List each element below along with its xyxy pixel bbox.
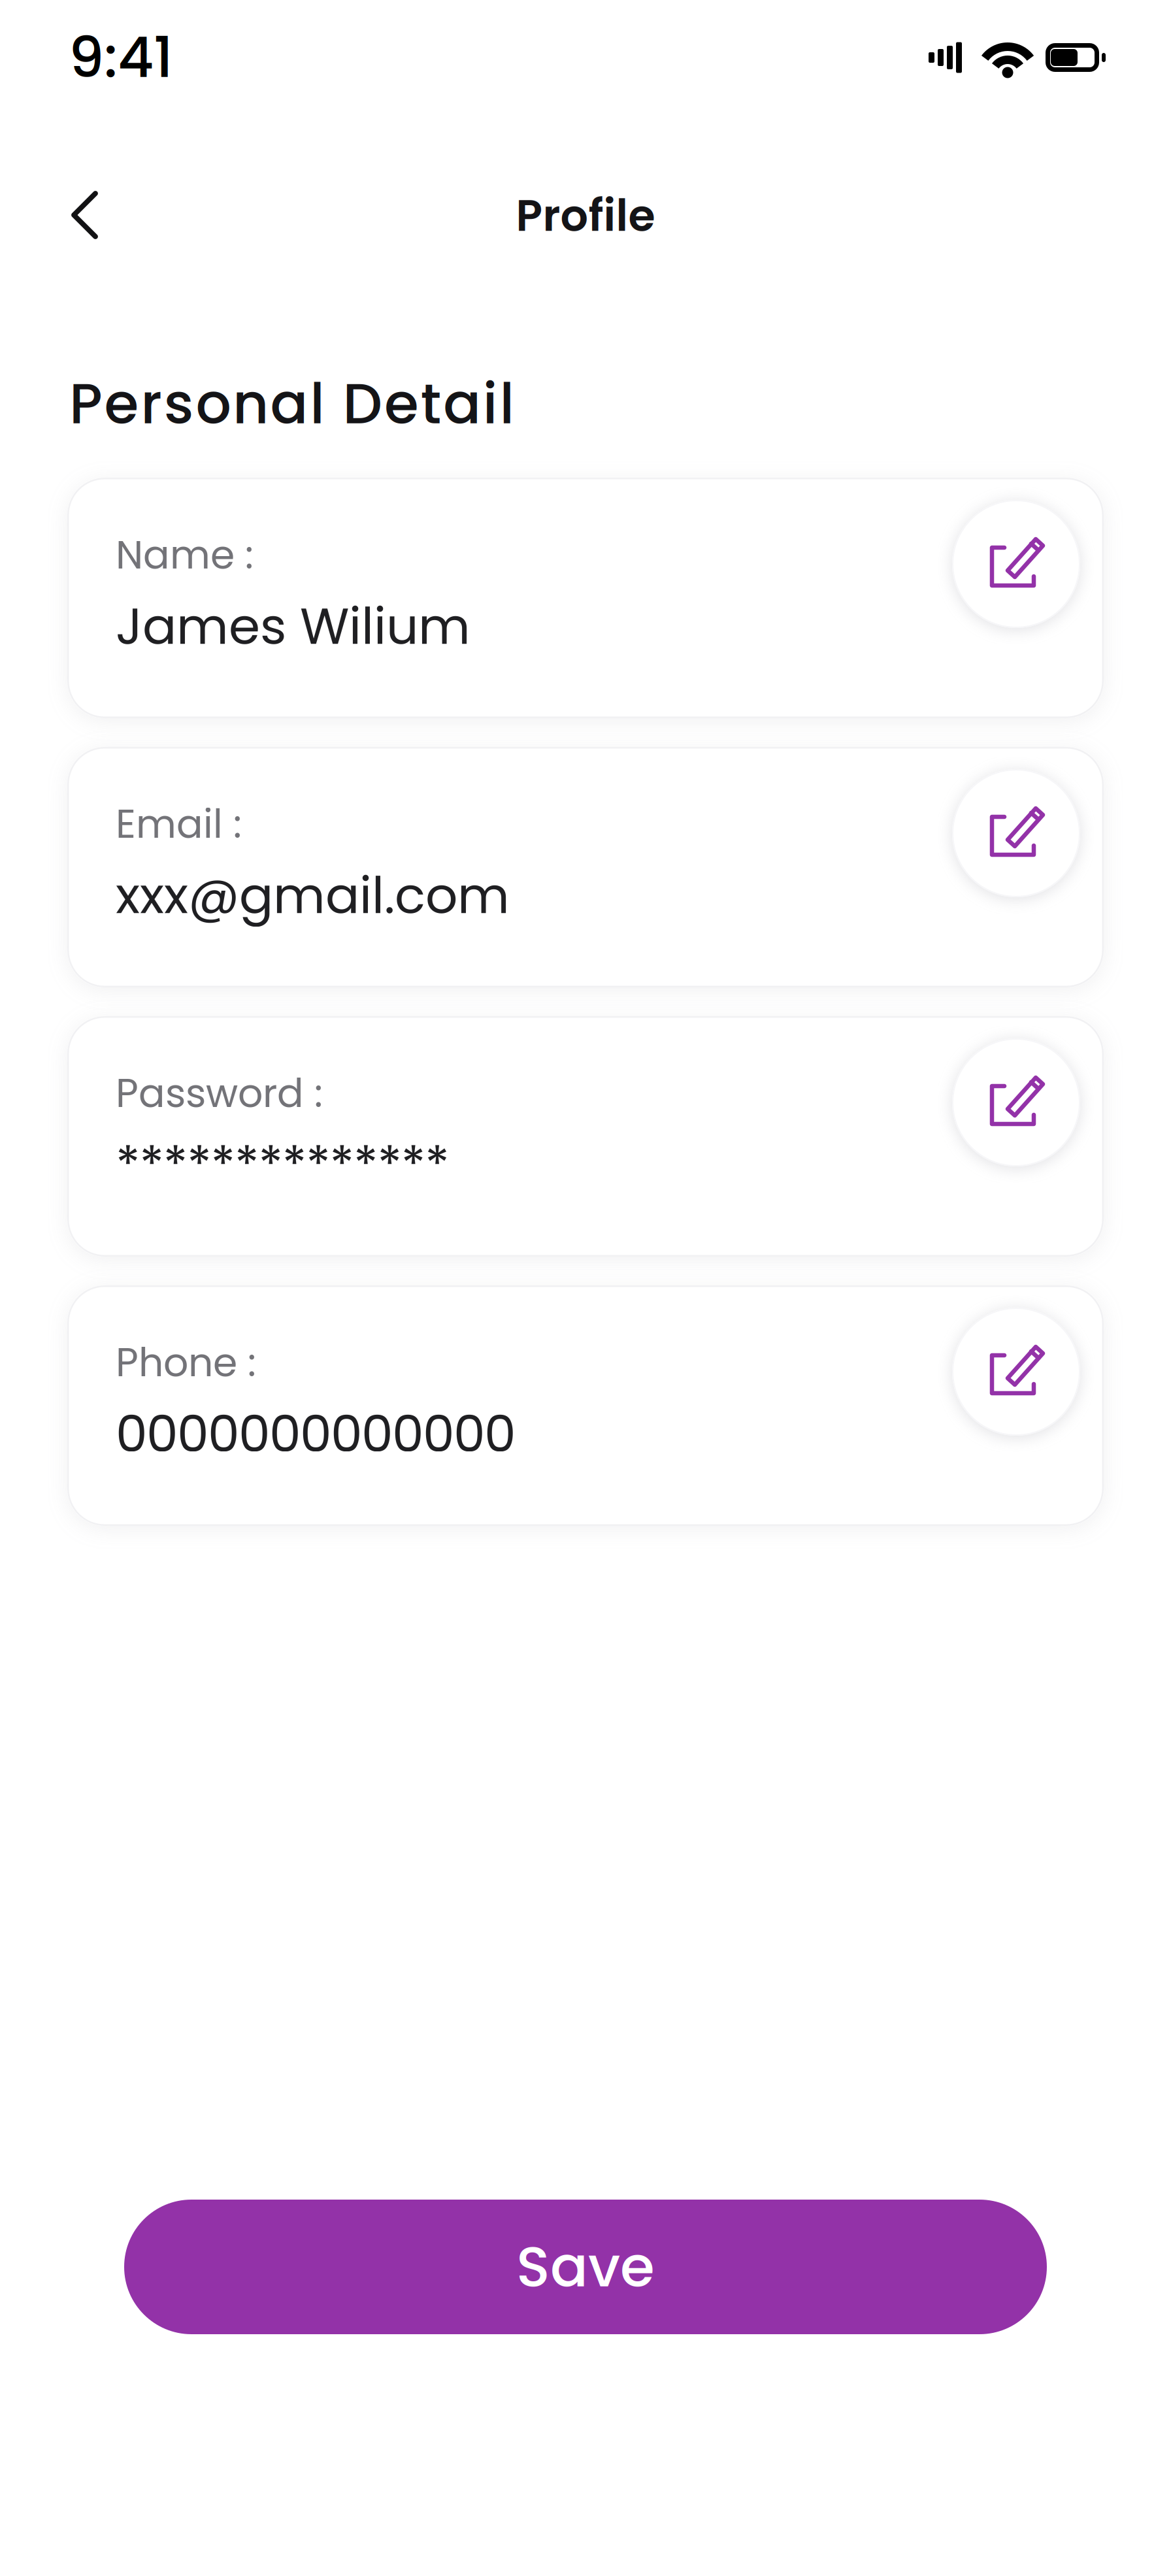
button[interactable]: Edit bbox=[952, 500, 1080, 628]
staticText: 0000000000000 bbox=[116, 1398, 516, 1469]
staticText: Phone : bbox=[116, 1335, 256, 1390]
staticText: James Wilium bbox=[116, 591, 470, 662]
button[interactable]: Back bbox=[51, 183, 119, 248]
staticText: Personal Detail bbox=[69, 365, 515, 443]
button[interactable]: Edit bbox=[952, 1038, 1080, 1166]
button[interactable]: Edit bbox=[952, 769, 1080, 897]
staticText: Password : bbox=[116, 1066, 323, 1121]
staticText: Name : bbox=[116, 527, 254, 582]
staticText: 9:41 bbox=[69, 18, 173, 97]
staticText: Profile bbox=[516, 185, 655, 246]
staticText: Save bbox=[516, 2228, 655, 2306]
button[interactable]: Save bbox=[124, 2200, 1047, 2334]
staticText: xxx@gmail.com bbox=[116, 860, 510, 931]
staticText: Email : bbox=[116, 797, 242, 851]
button[interactable]: Edit bbox=[952, 1308, 1080, 1436]
staticText: ************** bbox=[116, 1129, 450, 1200]
